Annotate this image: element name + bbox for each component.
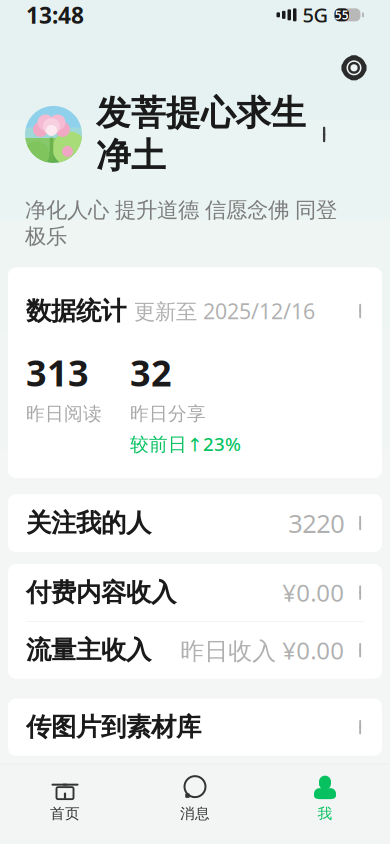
button[interactable]: 关注我的人 [8,494,382,552]
staticText: 净化人心 提升道德 信愿念佛 同登极乐 [25,197,337,249]
button[interactable]: 流量主收入 [8,622,382,679]
button[interactable]: 发菩提心求生净土 [0,90,390,177]
button[interactable]: 首页 [0,772,130,826]
staticText: 流量主收入 [26,635,151,666]
staticText: 5G [302,2,328,28]
button[interactable]: 传图片到素材库 [8,699,382,756]
button[interactable]: 消息 [130,772,260,826]
button[interactable]: 我 [260,772,390,826]
staticText: 更新至 2025/12/16 [134,297,315,325]
staticText: 昨日分享 [130,402,206,425]
staticText: 313 [26,348,89,396]
staticText: 传图片到素材库 [26,712,201,743]
staticText: 3220 [288,506,344,540]
staticText: 55 [335,7,349,23]
staticText: 昨日阅读 [26,402,102,425]
staticText: 消息 [180,805,210,823]
staticText: 发菩提心求生净土 [96,92,306,177]
staticText: 较前日↑23% [130,431,241,456]
staticText: 32 [130,348,172,396]
staticText: 付费内容收入 [26,577,176,608]
staticText: 昨日收入 ¥0.00 [180,634,344,666]
button[interactable]: 数据统计 [8,267,382,478]
staticText: 数据统计 [26,295,126,326]
button[interactable]: 付费内容收入 [8,564,382,621]
staticText: 13:48 [26,0,84,30]
button[interactable]: 设置 [332,46,376,90]
staticText: 我 [317,805,332,823]
staticText: ¥0.00 [282,577,344,608]
staticText: 关注我的人 [26,507,151,539]
staticText: 首页 [50,805,80,823]
